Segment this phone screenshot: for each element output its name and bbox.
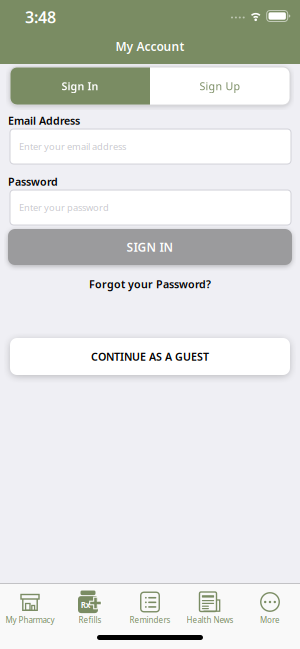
staticText: Password [8,174,58,189]
staticText: More [260,614,280,625]
staticText: Health News [186,614,233,625]
button[interactable]: Sign In [10,67,150,105]
button[interactable]: Sign Up [150,67,290,105]
staticText: Enter your email address [19,140,126,153]
staticText: 3:48 [25,6,56,28]
button[interactable]: CONTINUE AS A GUEST [10,338,290,375]
staticText: Enter your password [19,201,109,214]
staticText: Forgot your Password? [89,277,211,291]
staticText: Refills [78,614,101,625]
button[interactable]: Rx [60,591,120,625]
button[interactable]: Health News [180,591,240,625]
staticText: My Pharmacy [5,614,54,625]
button[interactable]: Reminders [120,591,180,625]
staticText: SIGN IN [126,239,173,255]
staticText: My Account [115,38,184,54]
staticText: Email Address [8,113,80,128]
staticText: Reminders [129,614,170,625]
button[interactable]: SIGN IN [8,229,292,265]
button[interactable]: Forgot your Password? [0,277,300,291]
staticText: CONTINUE AS A GUEST [91,349,209,364]
staticText: Rx [81,599,91,610]
button[interactable]: More [240,591,300,625]
button[interactable]: My Pharmacy [0,591,60,625]
staticText: Sign Up [199,79,240,93]
staticText: Sign In [61,79,98,93]
